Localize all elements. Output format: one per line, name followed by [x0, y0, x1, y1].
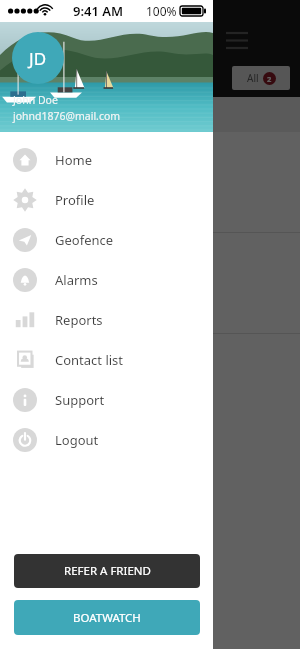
button[interactable]: AB	[0, 233, 300, 333]
button[interactable]: BOATWATCH	[14, 600, 200, 635]
staticText: REFER A FRIEND	[64, 563, 151, 579]
button[interactable]: Profile	[0, 180, 213, 220]
other: Open navigation menu	[226, 31, 248, 53]
staticText: Geofence	[55, 231, 114, 249]
button[interactable]: Profile photo	[12, 32, 64, 84]
staticText: Contact list	[55, 351, 124, 369]
staticText: JD	[29, 47, 47, 70]
button[interactable]: JN	[0, 132, 300, 232]
staticText: Jack Nelson	[72, 148, 148, 167]
staticText: 9:41 AM	[73, 2, 124, 20]
button[interactable]: Support	[0, 380, 213, 420]
staticText: Logout	[55, 431, 99, 449]
button[interactable]: Reports	[0, 300, 213, 340]
button[interactable]: Contact list	[0, 340, 213, 380]
staticText: Profile	[55, 191, 95, 209]
staticText: johnd1876@mail.com	[13, 109, 121, 123]
button[interactable]: All	[232, 66, 290, 90]
button[interactable]: Alarms	[0, 260, 213, 300]
staticText: AB	[27, 260, 47, 280]
staticText: Reports	[55, 311, 103, 329]
staticText: BOATWATCH	[73, 610, 141, 626]
button[interactable]: Logout	[0, 420, 213, 460]
button[interactable]: Home	[0, 140, 213, 180]
staticText: JN	[29, 159, 45, 179]
staticText: Support	[55, 391, 105, 409]
staticText: All	[247, 71, 259, 85]
staticText: Alarms	[55, 271, 98, 289]
staticText: Last seen 2h ago	[72, 271, 152, 285]
staticText: 2	[267, 74, 272, 84]
button[interactable]: Geofence	[0, 220, 213, 260]
staticText: 100%	[146, 3, 177, 19]
staticText: John Doe	[13, 93, 58, 107]
staticText: Home	[55, 151, 92, 169]
button[interactable]: REFER A FRIEND	[14, 554, 200, 588]
